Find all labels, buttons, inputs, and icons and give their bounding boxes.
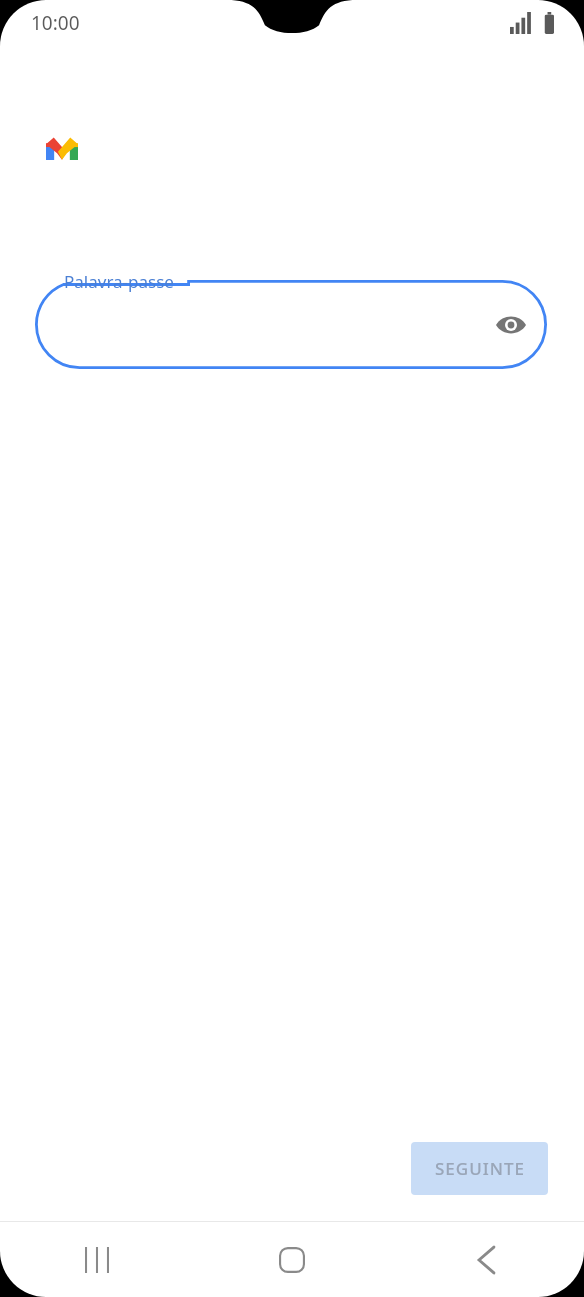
staticText: Palavra-passe xyxy=(64,270,174,293)
button[interactable]: Recents xyxy=(0,1222,194,1297)
button[interactable]: Palavra-passe xyxy=(35,280,547,369)
button[interactable]: Home xyxy=(194,1222,389,1297)
button[interactable]: Back xyxy=(389,1222,584,1297)
button[interactable]: SEGUINTE xyxy=(411,1142,548,1195)
staticText: 10:00 xyxy=(31,10,80,36)
staticText: SEGUINTE xyxy=(435,1157,525,1180)
button[interactable]: Mostrar palavra-passe xyxy=(489,303,533,347)
